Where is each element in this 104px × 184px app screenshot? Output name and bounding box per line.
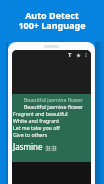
staticText: Beautiful jasmine flower: [24, 103, 84, 110]
staticText: White and fragrant: [13, 117, 60, 124]
staticText: Fragrant and beautiful: [13, 110, 68, 117]
button[interactable]: Favourite: [74, 51, 82, 59]
staticText: 100+ Language: [18, 19, 86, 31]
staticText: T: [68, 51, 72, 59]
button[interactable]: More options: [82, 51, 90, 59]
staticText: Let me take you off: [13, 124, 60, 131]
button[interactable]: Translate: [66, 51, 74, 59]
staticText: Beautiful jasmine flower: [24, 96, 84, 103]
staticText: Give to others: [13, 131, 48, 138]
staticText: Jasmine: [13, 141, 43, 152]
staticText: Auto Detect: [25, 9, 79, 21]
